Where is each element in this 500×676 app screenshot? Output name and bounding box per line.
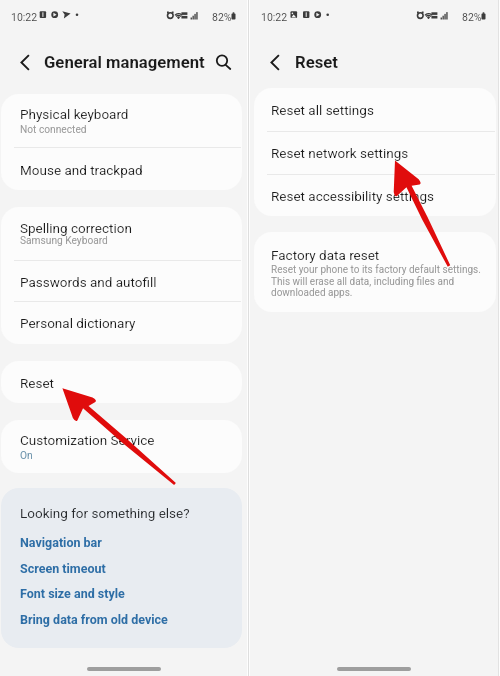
staticText: Reset accessibility settings <box>271 188 435 204</box>
staticText: Physical keyboard <box>20 106 129 122</box>
button[interactable]: Customization Service <box>1 420 242 473</box>
staticText: Personal dictionary <box>20 315 136 331</box>
button[interactable]: Passwords and autofill <box>1 260 242 302</box>
staticText: Samsung Keyboard <box>20 235 108 247</box>
button[interactable] <box>9 557 234 581</box>
staticText: Spelling correction <box>20 220 132 236</box>
staticText: Reset <box>20 375 55 391</box>
staticText: Bring data from old device <box>20 612 168 627</box>
staticText: Font size and style <box>20 586 125 601</box>
staticText: 10:22 <box>11 11 38 23</box>
button[interactable]: Reset network settings <box>254 131 496 174</box>
button[interactable]: Reset <box>1 361 242 403</box>
staticText: Reset all settings <box>271 102 374 118</box>
staticText: Passwords and autofill <box>20 274 157 290</box>
button[interactable]: Reset all settings <box>254 88 496 130</box>
button[interactable] <box>9 582 234 606</box>
button[interactable]: Back <box>259 46 291 78</box>
staticText: Mouse and trackpad <box>20 162 143 178</box>
button[interactable]: Reset accessibility settings <box>254 174 496 216</box>
staticText: Reset network settings <box>271 145 409 161</box>
staticText: 10:22 <box>261 11 288 23</box>
button[interactable]: Physical keyboard <box>1 94 242 147</box>
staticText: 82% <box>212 11 232 23</box>
staticText: Reset your phone to its factory default … <box>271 264 481 298</box>
staticText: Looking for something else? <box>20 505 190 521</box>
button[interactable] <box>9 531 234 555</box>
staticText: Navigation bar <box>20 535 102 550</box>
staticText: Reset <box>295 53 338 73</box>
button[interactable] <box>9 608 234 632</box>
button[interactable]: Factory data reset <box>254 232 496 312</box>
button[interactable]: Spelling correction <box>1 207 242 259</box>
staticText: Not connected <box>20 124 87 136</box>
staticText: Customization Service <box>20 432 155 448</box>
button[interactable]: Mouse and trackpad <box>1 148 242 190</box>
staticText: Screen timeout <box>20 561 106 576</box>
staticText: 82% <box>462 11 482 23</box>
button[interactable]: Search <box>206 46 238 78</box>
staticText: General management <box>44 53 205 73</box>
button[interactable]: Back <box>9 46 41 78</box>
staticText: Factory data reset <box>271 247 380 263</box>
staticText: On <box>20 450 33 462</box>
button[interactable]: Personal dictionary <box>1 302 242 344</box>
